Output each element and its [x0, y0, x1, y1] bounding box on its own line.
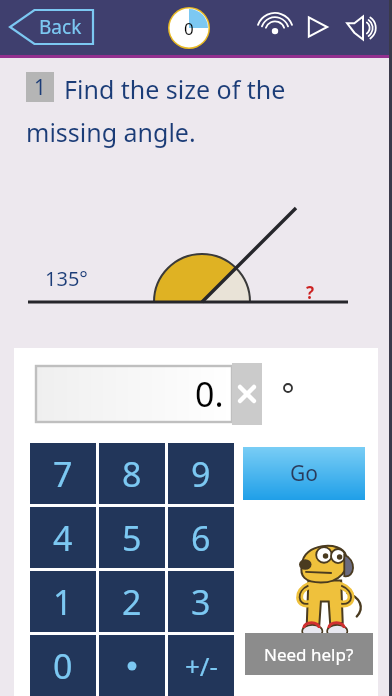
staticText: 5 [122, 515, 142, 561]
staticText: 8 [122, 451, 142, 497]
button[interactable]: 4 [30, 507, 96, 568]
staticText: Find the size of the [64, 72, 286, 106]
staticText: 6 [191, 515, 211, 561]
staticText: 135° [45, 265, 88, 292]
button[interactable]: Play [300, 10, 334, 44]
staticText: 0 [53, 643, 73, 689]
button[interactable]: 3 [168, 571, 234, 632]
button[interactable]: Need help? [245, 633, 373, 675]
button[interactable]: 9 [168, 443, 234, 504]
staticText: 0. [195, 371, 224, 417]
staticText: missing angle. [26, 115, 196, 149]
button[interactable]: Clear [232, 363, 262, 425]
staticText: +/- [185, 648, 218, 683]
staticText: 1 [53, 579, 73, 625]
button[interactable]: 7 [30, 443, 96, 504]
staticText: 9 [191, 451, 211, 497]
button[interactable]: Back [8, 8, 96, 46]
button[interactable]: 1 [30, 571, 96, 632]
staticText: Go [290, 459, 318, 488]
button[interactable]: Sound [345, 10, 381, 46]
button[interactable]: 0. [36, 366, 232, 422]
button[interactable]: Go [243, 447, 365, 500]
button[interactable]: Score [168, 7, 210, 49]
staticText: ? [306, 281, 315, 304]
button[interactable]: +/- [168, 635, 234, 696]
staticText: 4 [53, 515, 73, 561]
button[interactable]: 5 [99, 507, 165, 568]
button[interactable]: 8 [99, 443, 165, 504]
staticText: 3 [191, 579, 211, 625]
staticText: 0 [184, 17, 194, 40]
button[interactable]: 6 [168, 507, 234, 568]
button[interactable]: 0 [30, 635, 96, 696]
staticText: 2 [122, 579, 142, 625]
staticText: Back [39, 14, 82, 40]
button[interactable]: 2 [99, 571, 165, 632]
button[interactable] [99, 635, 165, 696]
button[interactable]: Connection [258, 10, 292, 44]
staticText: Need help? [264, 643, 354, 666]
staticText: 7 [53, 451, 73, 497]
staticText: 1 [34, 73, 47, 102]
